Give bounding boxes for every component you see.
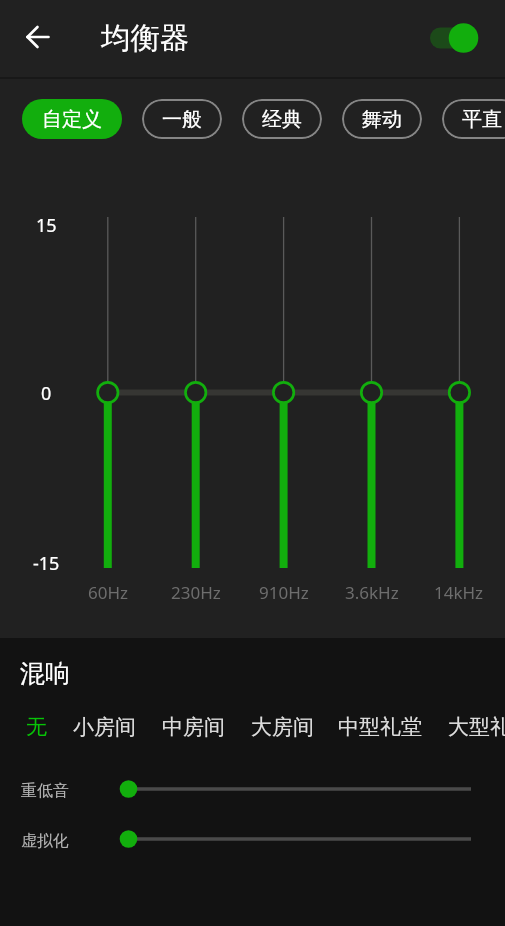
staticText: 均衡器 <box>101 20 190 57</box>
button[interactable]: 一般 <box>142 99 222 139</box>
staticText: 自定义 <box>42 107 102 132</box>
staticText: 平直 <box>462 107 502 132</box>
staticText: 一般 <box>162 107 202 132</box>
staticText: 无 <box>26 714 47 740</box>
button[interactable]: 中房间 <box>162 713 225 741</box>
button[interactable]: 大房间 <box>251 713 314 741</box>
button[interactable]: 中型礼堂 <box>338 713 422 741</box>
staticText: 小房间 <box>73 714 136 740</box>
button[interactable]: 小房间 <box>73 713 136 741</box>
button[interactable]: Toggle equalizer <box>420 13 478 63</box>
staticText: 舞动 <box>362 107 402 132</box>
button[interactable]: 大型礼堂 <box>448 713 505 741</box>
button[interactable]: 无 <box>26 713 47 741</box>
staticText: 重低音 <box>21 781 69 801</box>
staticText: 经典 <box>262 107 302 132</box>
staticText: 14kHz <box>434 581 484 604</box>
button[interactable]: 平直 <box>442 99 505 139</box>
staticText: 230Hz <box>171 581 221 604</box>
staticText: 3.6kHz <box>345 581 399 604</box>
button[interactable]: 虚拟化 <box>110 825 490 853</box>
staticText: 大型礼堂 <box>448 714 505 740</box>
staticText: 910Hz <box>259 581 309 604</box>
staticText: 混响 <box>20 658 70 689</box>
button[interactable]: Back <box>14 13 62 61</box>
staticText: 虚拟化 <box>21 831 69 851</box>
button[interactable]: 重低音 <box>110 775 490 803</box>
staticText: 15 <box>36 213 57 238</box>
staticText: 0 <box>41 381 52 406</box>
staticText: 中型礼堂 <box>338 714 422 740</box>
staticText: 大房间 <box>251 714 314 740</box>
button[interactable]: 舞动 <box>342 99 422 139</box>
staticText: -15 <box>33 551 60 576</box>
button[interactable]: 自定义 <box>22 99 122 139</box>
staticText: 60Hz <box>88 581 129 604</box>
staticText: 中房间 <box>162 714 225 740</box>
button[interactable]: 经典 <box>242 99 322 139</box>
